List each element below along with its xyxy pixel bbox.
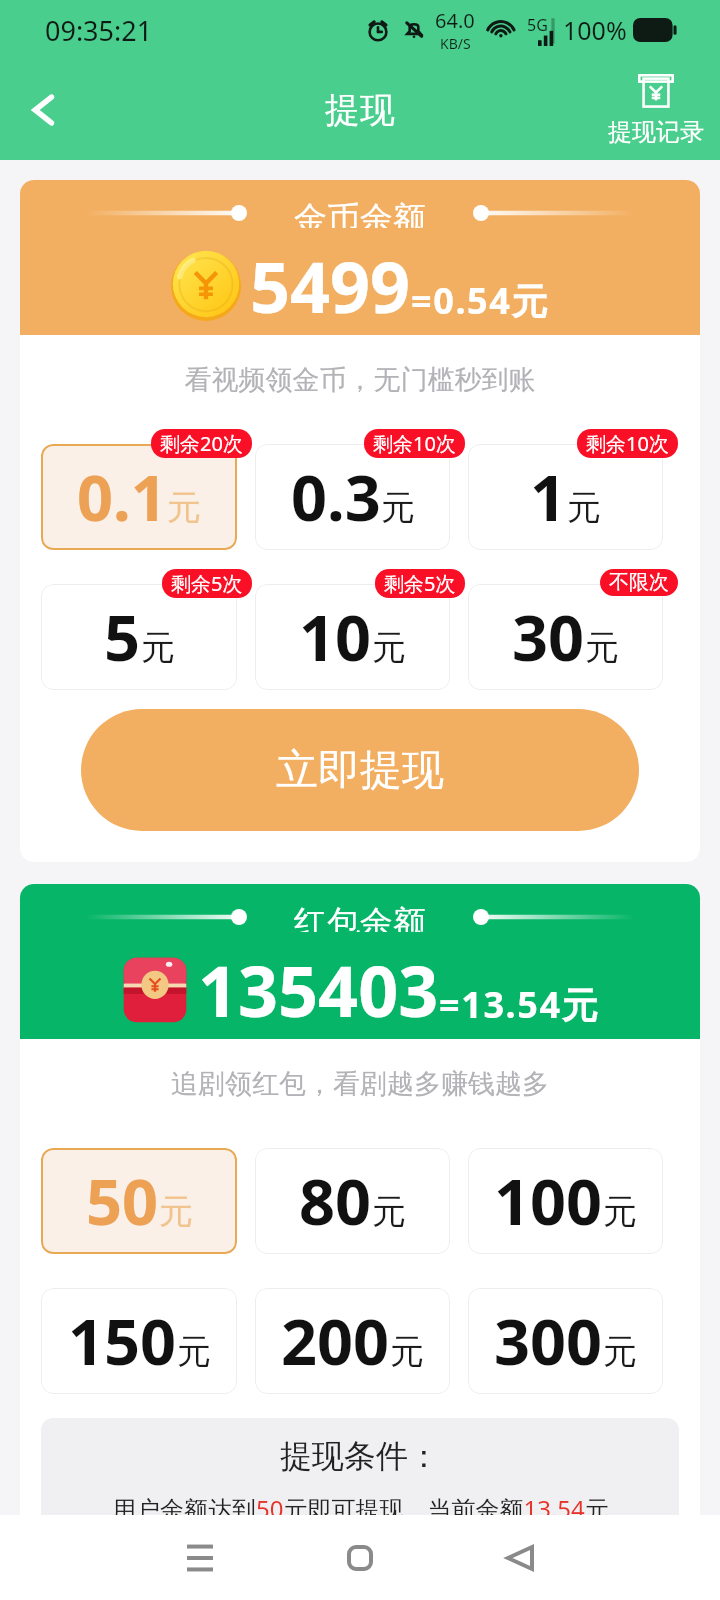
staticText: 剩余5次 bbox=[171, 570, 243, 597]
button[interactable]: 50 bbox=[41, 1148, 237, 1254]
staticText: 剩余10次 bbox=[586, 430, 669, 457]
staticText: 看视频领金币，无门槛秒到账 bbox=[20, 363, 700, 397]
staticText: 200 bbox=[281, 1298, 390, 1384]
staticText: 元 bbox=[372, 1190, 406, 1233]
staticText: 元 bbox=[141, 626, 175, 669]
staticText: 元 bbox=[381, 486, 415, 529]
button[interactable]: 30 bbox=[468, 584, 663, 690]
staticText: 元 bbox=[567, 486, 601, 529]
staticText: 5G bbox=[527, 14, 548, 36]
button[interactable]: Home bbox=[280, 1515, 440, 1600]
button[interactable]: 300 bbox=[468, 1288, 663, 1394]
staticText: 09:35:21 bbox=[45, 12, 153, 49]
staticText: 提现记录 bbox=[608, 117, 704, 147]
staticText: 5499 bbox=[250, 238, 411, 333]
staticText: 元 bbox=[167, 486, 201, 529]
button[interactable]: Back bbox=[14, 80, 74, 140]
button[interactable]: Back bbox=[440, 1515, 600, 1600]
staticText: 150 bbox=[68, 1298, 177, 1384]
staticText: 50 bbox=[86, 1158, 159, 1244]
button[interactable]: 5 bbox=[41, 584, 237, 690]
staticText: 剩余5次 bbox=[384, 570, 456, 597]
staticText: 30 bbox=[512, 594, 585, 680]
button[interactable]: 提现记录 bbox=[604, 72, 708, 149]
staticText: 剩余10次 bbox=[373, 430, 456, 457]
staticText: 0.1 bbox=[77, 454, 167, 540]
staticText: 100 bbox=[494, 1158, 603, 1244]
staticText: 80 bbox=[299, 1158, 372, 1244]
staticText: 提现条件： bbox=[280, 1436, 440, 1476]
staticText: 元 bbox=[159, 1190, 193, 1233]
staticText: 元 bbox=[603, 1190, 637, 1233]
staticText: 提现 bbox=[325, 88, 395, 132]
staticText: KB/S bbox=[440, 34, 471, 53]
button[interactable]: 1 bbox=[468, 444, 663, 550]
button[interactable]: 80 bbox=[255, 1148, 450, 1254]
button[interactable]: 0.3 bbox=[255, 444, 450, 550]
staticText: 用户余额达到50元即可提现，当前余额13.54元 bbox=[112, 1492, 609, 1525]
staticText: =13.54元 bbox=[439, 980, 600, 1029]
staticText: 追剧领红包，看剧越多赚钱越多 bbox=[20, 1067, 700, 1101]
staticText: 元 bbox=[603, 1330, 637, 1373]
staticText: 100% bbox=[563, 13, 627, 47]
button[interactable]: 立即提现 bbox=[81, 709, 639, 831]
staticText: 金币余额 bbox=[294, 198, 426, 228]
staticText: 元 bbox=[372, 626, 406, 669]
button[interactable]: 200 bbox=[255, 1288, 450, 1394]
staticText: 135403 bbox=[198, 942, 439, 1037]
staticText: 300 bbox=[494, 1298, 603, 1384]
staticText: 0.3 bbox=[291, 454, 381, 540]
staticText: 剩余20次 bbox=[160, 430, 243, 457]
staticText: 5 bbox=[104, 594, 141, 680]
staticText: 元 bbox=[390, 1330, 424, 1373]
staticText: 64.0 bbox=[435, 7, 475, 34]
staticText: 元 bbox=[177, 1330, 211, 1373]
staticText: 立即提现 bbox=[276, 744, 444, 797]
staticText: 不限次 bbox=[609, 570, 669, 595]
button[interactable]: 100 bbox=[468, 1148, 663, 1254]
button[interactable]: 10 bbox=[255, 584, 450, 690]
button[interactable]: 150 bbox=[41, 1288, 237, 1394]
staticText: 元 bbox=[585, 626, 619, 669]
staticText: =0.54元 bbox=[411, 276, 550, 325]
button[interactable]: 0.1 bbox=[41, 444, 237, 550]
button[interactable]: Recents bbox=[120, 1515, 280, 1600]
staticText: 红包余额 bbox=[294, 902, 426, 932]
staticText: 10 bbox=[299, 594, 372, 680]
staticText: 1 bbox=[530, 454, 567, 540]
